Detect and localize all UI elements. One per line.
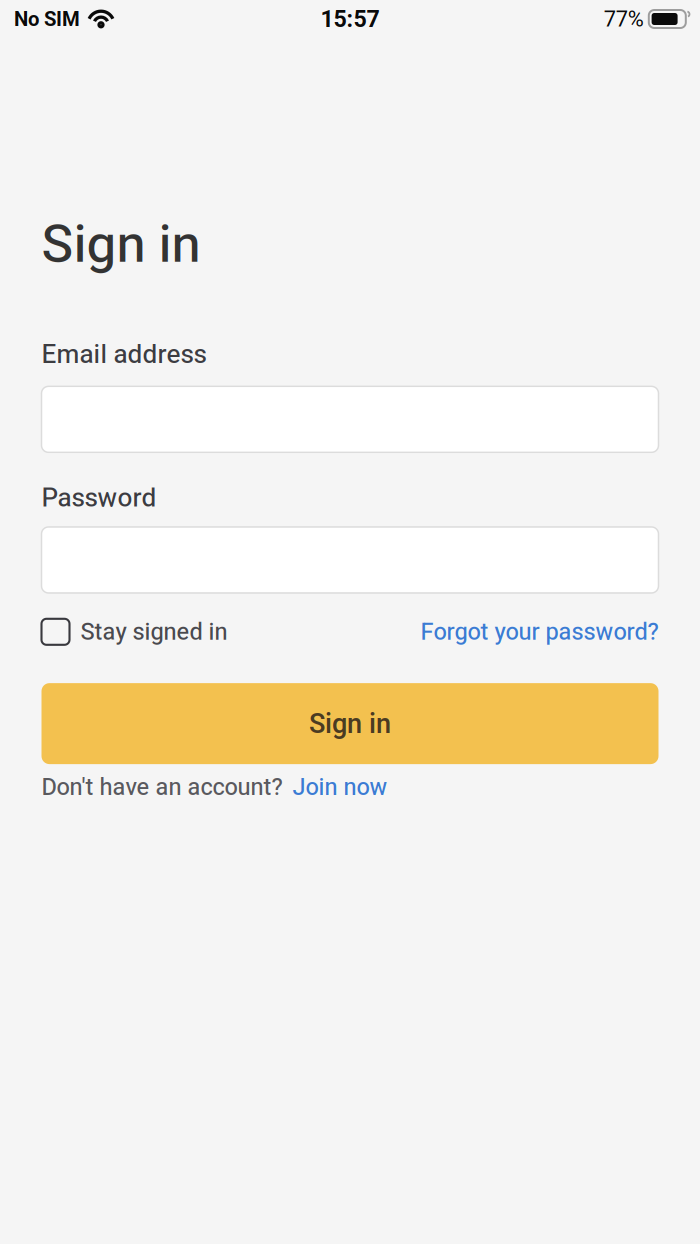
- staticText: 77%: [604, 6, 644, 32]
- staticText: Sign in: [309, 708, 391, 739]
- button[interactable]: Join now: [292, 773, 387, 801]
- button[interactable]: Forgot your password?: [420, 618, 658, 646]
- staticText: Email address: [41, 339, 206, 369]
- staticText: No SIM: [14, 7, 80, 31]
- staticText: Password: [41, 482, 156, 513]
- button[interactable]: Sign in: [41, 683, 658, 764]
- staticText: Sign in: [41, 213, 200, 275]
- staticText: Don't have an account?: [41, 773, 282, 801]
- staticText: 15:57: [320, 5, 379, 33]
- staticText: Join now: [292, 773, 387, 801]
- staticText: Forgot your password?: [420, 618, 658, 646]
- button[interactable]: Stay signed in: [41, 618, 227, 646]
- staticText: Stay signed in: [80, 618, 227, 646]
